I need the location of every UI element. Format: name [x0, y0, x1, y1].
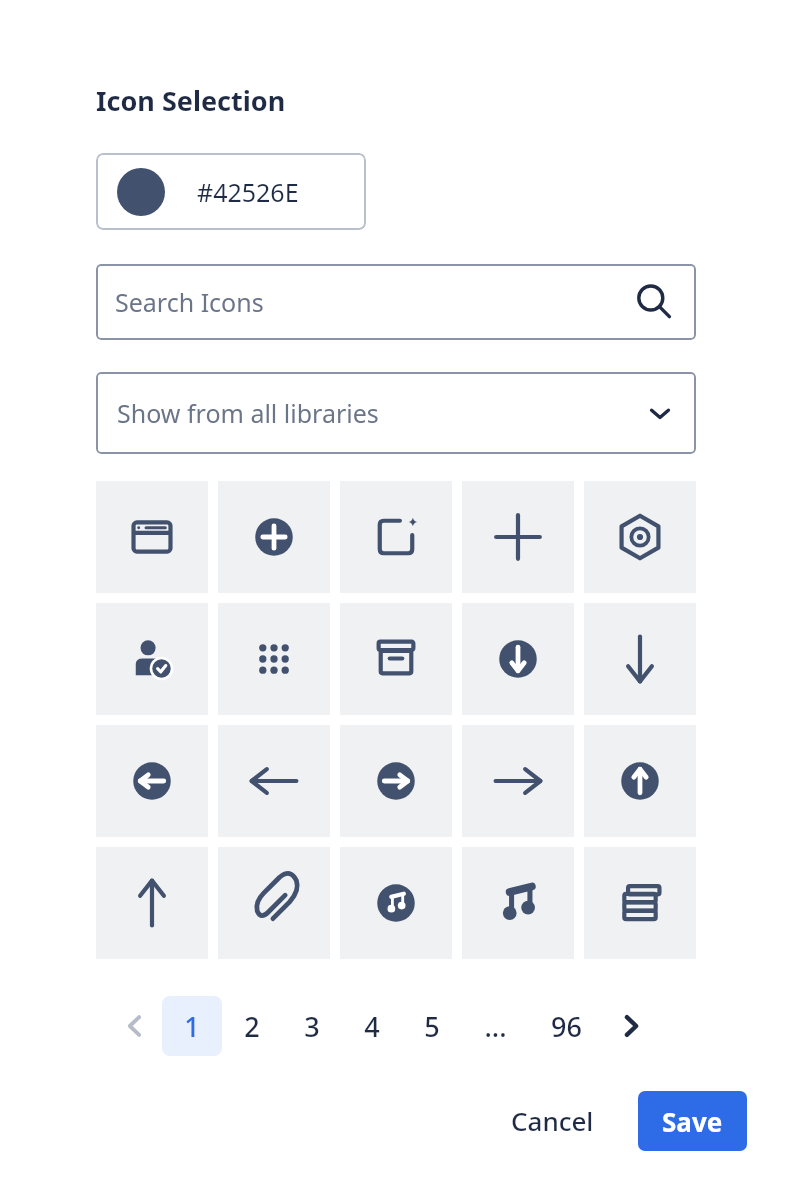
- button[interactable]: Up circle: [584, 725, 696, 837]
- staticText: Show from all libraries: [117, 396, 379, 430]
- button[interactable]: Forward: [462, 725, 574, 837]
- button[interactable]: 96: [528, 996, 604, 1056]
- staticText: 96: [551, 1008, 582, 1045]
- button[interactable]: Forward circle: [340, 725, 452, 837]
- button[interactable]: Next page: [604, 999, 658, 1053]
- button[interactable]: Previous page: [110, 1001, 160, 1051]
- staticText: ...: [484, 1008, 507, 1045]
- staticText: 3: [304, 1008, 320, 1045]
- button[interactable]: Search Icons: [96, 264, 696, 340]
- button[interactable]: Add: [462, 481, 574, 593]
- staticText: 5: [424, 1008, 440, 1045]
- button[interactable]: Music: [462, 847, 574, 959]
- button[interactable]: Cancel: [493, 1089, 612, 1152]
- button[interactable]: Back circle: [96, 725, 208, 837]
- staticText: Search Icons: [115, 285, 264, 319]
- button[interactable]: Person check: [96, 603, 208, 715]
- button[interactable]: Add circle: [218, 481, 330, 593]
- button[interactable]: #42526E: [96, 153, 366, 230]
- staticText: Save: [662, 1104, 723, 1139]
- button[interactable]: Settings: [584, 481, 696, 593]
- button[interactable]: Arrow down: [584, 603, 696, 715]
- staticText: Cancel: [511, 1103, 594, 1138]
- staticText: Icon Selection: [96, 82, 286, 119]
- button[interactable]: 3: [282, 996, 342, 1056]
- button[interactable]: Download: [462, 603, 574, 715]
- button[interactable]: 2: [222, 996, 282, 1056]
- button[interactable]: Show from all libraries: [96, 372, 696, 454]
- button[interactable]: Archive: [340, 603, 452, 715]
- button[interactable]: 1: [162, 996, 222, 1056]
- button[interactable]: Attach: [218, 847, 330, 959]
- button[interactable]: 5: [402, 996, 462, 1056]
- button[interactable]: Arrow up: [96, 847, 208, 959]
- button[interactable]: Apps grid: [218, 603, 330, 715]
- button[interactable]: ...: [462, 996, 528, 1056]
- staticText: 4: [364, 1008, 380, 1045]
- button[interactable]: Layers: [584, 847, 696, 959]
- staticText: #42526E: [197, 175, 299, 209]
- button[interactable]: Back: [218, 725, 330, 837]
- button[interactable]: Music circle: [340, 847, 452, 959]
- button[interactable]: Save: [638, 1091, 747, 1151]
- button[interactable]: 4: [342, 996, 402, 1056]
- button[interactable]: Browser: [96, 481, 208, 593]
- staticText: 1: [184, 1008, 200, 1045]
- staticText: 2: [244, 1008, 260, 1045]
- button[interactable]: New note: [340, 481, 452, 593]
